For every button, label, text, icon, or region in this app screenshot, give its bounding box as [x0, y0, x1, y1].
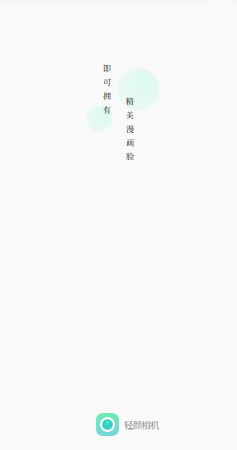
staticText: 精 [126, 95, 134, 107]
staticText: 拥 [103, 90, 111, 101]
button[interactable]: 轻颜相机 [96, 413, 159, 436]
staticText: 轻颜相机 [124, 418, 159, 431]
staticText: 可 [103, 76, 111, 87]
staticText: 脸 [126, 150, 134, 162]
staticText: 即 [103, 62, 111, 74]
staticText: 有 [103, 104, 111, 115]
staticText: 画 [126, 137, 134, 148]
staticText: 漫 [126, 123, 134, 134]
staticText: 美 [126, 109, 134, 120]
